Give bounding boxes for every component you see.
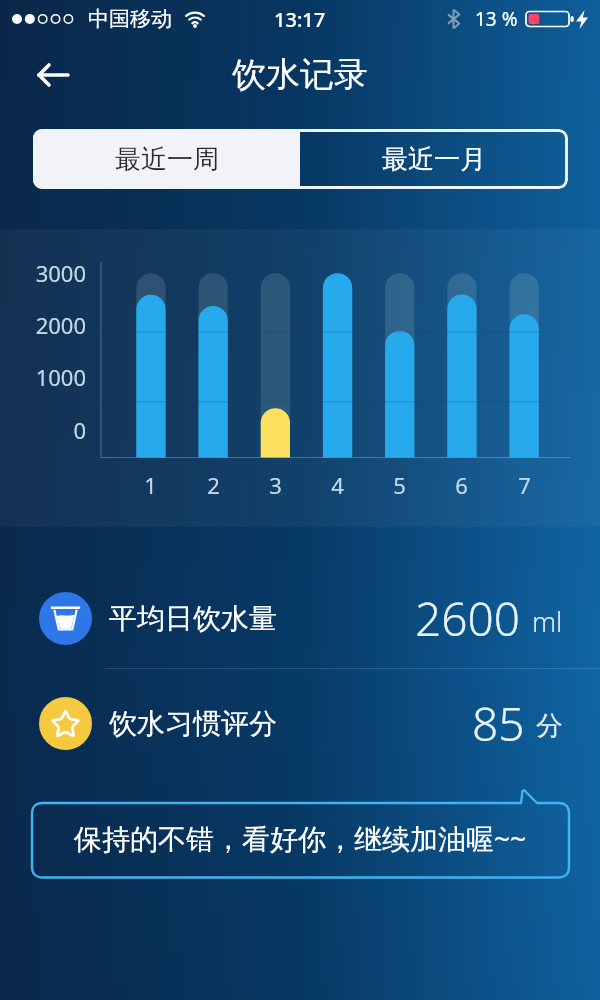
button[interactable]: 饮水习惯评分: [0, 677, 600, 769]
staticText: 饮水习惯评分: [109, 706, 277, 741]
staticText: 7: [500, 470, 549, 500]
button[interactable]: 最近一月: [300, 129, 568, 189]
staticText: 6: [437, 470, 486, 500]
staticText: 保持的不错，看好你，继续加油喔~~: [74, 819, 527, 857]
button[interactable]: 平均日饮水量: [0, 572, 600, 664]
button[interactable]: Back: [25, 47, 81, 103]
staticText: 0: [21, 415, 86, 445]
staticText: 85: [472, 692, 525, 755]
staticText: 2: [189, 470, 238, 500]
staticText: 分: [536, 709, 563, 743]
staticText: 1: [126, 470, 175, 500]
staticText: 2600: [415, 587, 521, 650]
staticText: 平均日饮水量: [109, 601, 277, 636]
staticText: 1000: [21, 362, 86, 392]
staticText: ml: [532, 603, 563, 640]
staticText: 饮水记录: [232, 53, 368, 96]
staticText: 5: [375, 470, 424, 500]
staticText: 4: [313, 470, 362, 500]
staticText: 2000: [21, 310, 86, 340]
staticText: 中国移动: [88, 6, 172, 32]
staticText: 3000: [21, 258, 86, 288]
staticText: 最近一周: [115, 143, 219, 176]
staticText: 3: [251, 470, 300, 500]
staticText: 13:17: [274, 6, 326, 33]
staticText: 13 %: [475, 6, 518, 32]
staticText: 最近一月: [382, 143, 486, 176]
button[interactable]: 最近一周: [33, 129, 300, 189]
